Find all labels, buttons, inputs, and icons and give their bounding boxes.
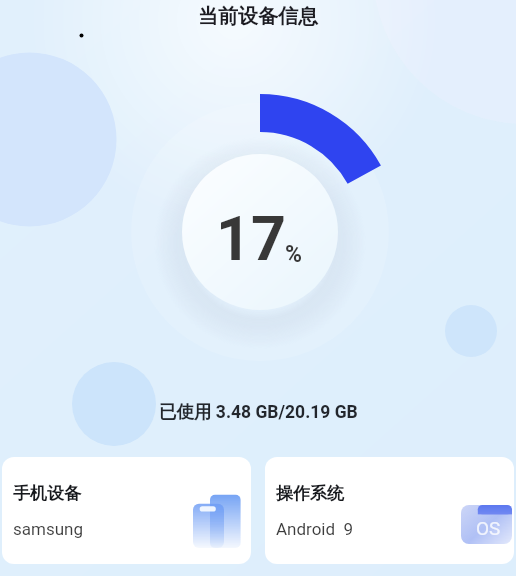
staticText: % bbox=[285, 241, 302, 268]
other: Phone device bbox=[193, 494, 241, 548]
staticText: 17 bbox=[216, 203, 286, 274]
staticText: OS bbox=[476, 517, 501, 539]
staticText: Android 9 bbox=[276, 519, 354, 539]
staticText: 当前设备信息 bbox=[198, 4, 318, 29]
button[interactable]: Operating system bbox=[265, 457, 514, 564]
button[interactable]: Phone device bbox=[2, 457, 251, 564]
staticText: samsung bbox=[13, 519, 84, 539]
staticText: 已使用 3.48 GB/20.19 GB bbox=[159, 401, 358, 423]
other: Operating system bbox=[461, 505, 512, 544]
staticText: 操作系统 bbox=[276, 483, 344, 504]
staticText: 手机设备 bbox=[13, 483, 81, 504]
